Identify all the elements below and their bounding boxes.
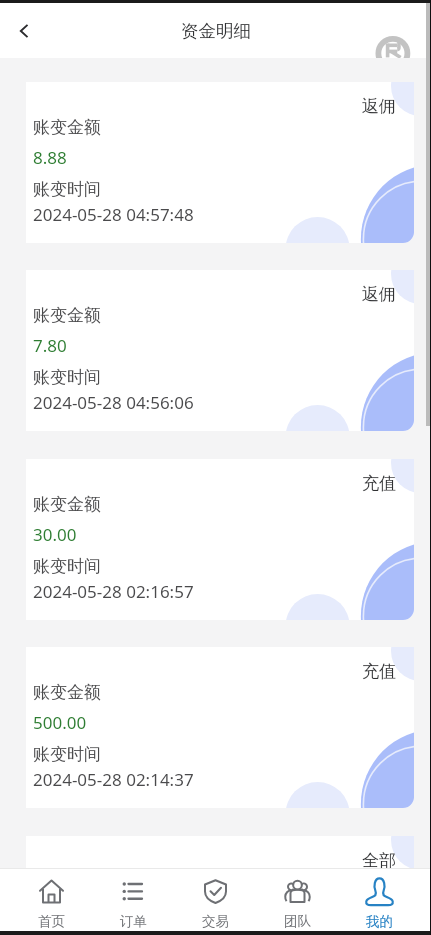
staticText: 充值 xyxy=(362,473,396,494)
staticText: 充值 xyxy=(362,661,396,682)
staticText: 7.80 xyxy=(33,334,67,357)
staticText: 8.88 xyxy=(33,146,67,169)
staticText: 账变时间 xyxy=(33,744,101,765)
staticText: 账变时间 xyxy=(33,367,101,388)
staticText: 2024-05-28 04:56:06 xyxy=(33,391,194,414)
staticText: 账变金额 xyxy=(33,305,101,326)
staticText: 2024-05-28 02:16:57 xyxy=(33,580,194,603)
staticText: 2024-05-28 04:57:48 xyxy=(33,203,194,226)
staticText: 交易 xyxy=(202,913,229,930)
button[interactable]: 全部 xyxy=(26,836,414,868)
button[interactable]: 返佣 xyxy=(26,270,414,431)
staticText: 账变金额 xyxy=(33,117,101,138)
staticText: 资金明细 xyxy=(181,20,251,42)
staticText: 账变时间 xyxy=(33,179,101,200)
button[interactable]: Back xyxy=(2,9,46,53)
staticText: 账变金额 xyxy=(33,494,101,515)
staticText: 团队 xyxy=(284,913,311,930)
staticText: 30.00 xyxy=(33,523,77,546)
staticText: 账变金额 xyxy=(33,682,101,703)
staticText: 订单 xyxy=(120,913,147,930)
staticText: 返佣 xyxy=(362,284,396,305)
button[interactable]: 首页 xyxy=(11,869,92,931)
button[interactable]: 我的 xyxy=(338,869,420,931)
staticText: 2024-05-28 02:14:37 xyxy=(33,768,194,791)
button[interactable]: 充值 xyxy=(26,459,414,620)
button[interactable]: 返佣 xyxy=(26,82,414,243)
staticText: 返佣 xyxy=(362,96,396,117)
staticText: 账变时间 xyxy=(33,556,101,577)
button[interactable]: 交易 xyxy=(174,869,256,931)
button[interactable]: 团队 xyxy=(256,869,338,931)
staticText: 首页 xyxy=(38,913,65,930)
staticText: 全部 xyxy=(362,850,396,868)
staticText: 我的 xyxy=(366,913,393,930)
staticText: 500.00 xyxy=(33,711,87,734)
button[interactable]: 订单 xyxy=(92,869,174,931)
button[interactable]: 充值 xyxy=(26,647,414,808)
